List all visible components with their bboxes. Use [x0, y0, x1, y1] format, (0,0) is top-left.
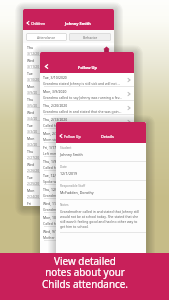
button[interactable]: Children: [25, 20, 46, 26]
staticText: Mother said Johnny had a dentist visit..…: [43, 235, 106, 240]
staticText: Mon: [27, 84, 35, 89]
button[interactable]: Thu: [23, 95, 114, 108]
staticText: Student: [60, 146, 72, 150]
staticText: Johnny Smith: [60, 152, 83, 157]
staticText: Grandma stated Johnny is still sick and …: [43, 81, 121, 86]
staticText: Behavior: [83, 35, 98, 40]
button[interactable]: Wed: [23, 108, 114, 121]
button[interactable]: Behavior: [69, 33, 111, 41]
staticText: Spoke with mother about tardies this mon…: [43, 179, 117, 184]
button[interactable]: Thu, 12/5/2019: [40, 185, 134, 199]
button[interactable]: Mon, 2/3/2020: [40, 129, 134, 143]
button[interactable]: Thu, 2/20/2020: [40, 101, 134, 115]
staticText: Tue: [27, 175, 33, 180]
staticText: 3/5/20: [27, 103, 38, 107]
button[interactable]: Thu: [23, 43, 114, 56]
staticText: Date: [60, 165, 67, 169]
staticText: Fri: [27, 201, 32, 206]
staticText: 2/24/20: [27, 194, 40, 198]
button[interactable]: Thu, 1/9/2020: [40, 157, 134, 171]
button[interactable]: Mon: [23, 82, 114, 95]
button[interactable]: Wed: [23, 56, 114, 69]
staticText: Mon, 10/7/2019: [43, 215, 69, 220]
staticText: 2/25/20: [27, 181, 40, 185]
staticText: Grandma called to say Johnny was running…: [43, 95, 122, 100]
staticText: 3/2/20: [27, 142, 38, 146]
button[interactable]: Fri: [23, 199, 114, 206]
staticText: Called home about attendance concerns...: [43, 221, 111, 226]
staticText: Thu: [27, 97, 34, 102]
button[interactable]: Thu: [23, 147, 114, 160]
button[interactable]: [42, 62, 50, 70]
staticText: View detailed notes about your Childs at…: [42, 254, 128, 291]
staticText: Attendance: [37, 35, 56, 40]
staticText: Called home to check on Johnny's absence…: [43, 123, 118, 128]
staticText: Thu: [27, 149, 34, 154]
staticText: Grandma called in and stated that she wa…: [43, 109, 122, 114]
staticText: Wed, 11/6/2019: [43, 201, 69, 206]
staticText: Follow Up: [78, 65, 97, 70]
button[interactable]: Tue, 3/10/2020: [40, 73, 134, 87]
staticText: Called home - no answer, left a voicemai…: [43, 165, 116, 170]
staticText: Wed, 9/18/2019: [43, 229, 69, 234]
button[interactable]: Tue: [23, 173, 114, 186]
staticText: Grandma stated Johnny had a stomach ache…: [43, 207, 117, 212]
button[interactable]: Mon: [23, 134, 114, 147]
staticText: Children: [31, 21, 46, 26]
staticText: Left message for parent regarding attend…: [43, 151, 120, 156]
staticText: 2/26/20: [27, 168, 40, 172]
button[interactable]: Mon, 3/9/2020: [40, 87, 134, 101]
staticText: Mom stated Johnny had a doctor appointme…: [43, 137, 120, 142]
button[interactable]: Wed, 9/18/2019: [40, 227, 134, 241]
button[interactable]: Thu, 2/13/2020: [40, 115, 134, 129]
button[interactable]: Follow Up: [58, 133, 81, 139]
staticText: Wed: [27, 58, 35, 63]
staticText: Johnny Smith: [65, 21, 91, 26]
staticText: Wed: [27, 162, 35, 167]
button[interactable]: Mon: [23, 186, 114, 199]
staticText: Responsible Staff: [60, 184, 86, 188]
staticText: 12/1/2019: [60, 171, 78, 176]
staticText: Tue, 12/10/2019: [43, 173, 69, 178]
staticText: Thu, 12/5/2019: [43, 187, 68, 192]
button[interactable]: Fri, 1/17/2020: [40, 143, 134, 157]
staticText: Notes: [60, 203, 69, 207]
staticText: Fri, 1/17/2020: [43, 145, 66, 150]
button[interactable]: Wed: [23, 160, 114, 173]
staticText: 3/3/20: [27, 129, 38, 133]
staticText: 3/10/20: [27, 77, 40, 81]
staticText: Thu, 2/13/2020: [43, 117, 68, 122]
staticText: Thu, 1/9/2020: [43, 159, 66, 164]
staticText: Details: [101, 134, 114, 139]
staticText: Tue: [27, 71, 33, 76]
button[interactable]: Mon, 10/7/2019: [40, 213, 134, 227]
staticText: 2/27/20: [27, 155, 40, 159]
staticText: 3/4/20: [27, 116, 38, 120]
button[interactable]: Tue, 12/10/2019: [40, 171, 134, 185]
button[interactable]: Attendance: [26, 33, 67, 41]
staticText: Mon: [27, 188, 35, 193]
staticText: McFadden, Dorothy: [60, 190, 94, 195]
staticText: 3/12/20: [27, 51, 40, 55]
staticText: Wed: [27, 110, 35, 115]
staticText: Grandmother called in and stated that Jo…: [60, 209, 142, 229]
button[interactable]: Tue: [23, 121, 114, 134]
button[interactable]: Tue: [23, 69, 114, 82]
staticText: Mon, 2/3/2020: [43, 131, 67, 136]
staticText: Tue: [27, 123, 33, 128]
staticText: Thu, 2/20/2020: [43, 103, 68, 108]
staticText: 3/9/20: [27, 90, 38, 94]
staticText: Follow Up: [64, 134, 81, 139]
staticText: Thu: [27, 45, 34, 50]
staticText: Mon: [27, 136, 35, 141]
staticText: Tue, 3/10/2020: [43, 75, 67, 80]
staticText: 3/11/20: [27, 64, 40, 68]
staticText: Mon, 3/9/2020: [43, 89, 67, 94]
button[interactable]: Wed, 11/6/2019: [40, 199, 134, 213]
staticText: Grandmother called and stated Johnny sti…: [43, 193, 114, 198]
